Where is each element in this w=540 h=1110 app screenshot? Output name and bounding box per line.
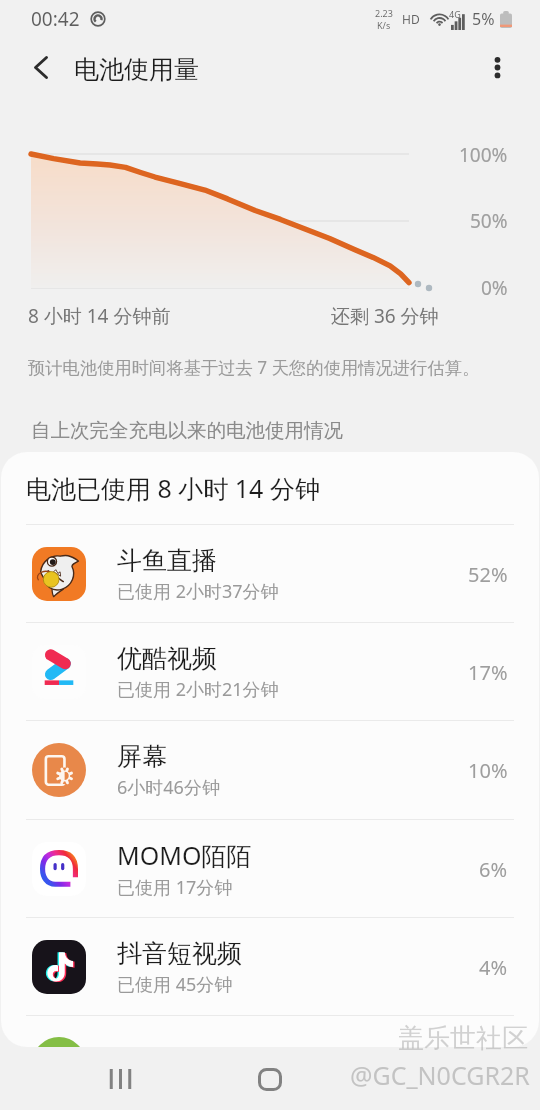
button[interactable]: Back [16, 42, 66, 92]
staticText: 还剩 36 分钟 [331, 303, 439, 329]
staticText: 已使用 17分钟 [117, 875, 233, 900]
button[interactable]: Recent apps [95, 1055, 143, 1103]
staticText: 4% [479, 954, 508, 981]
staticText: 已使用 2小时37分钟 [117, 579, 279, 604]
staticText: K/s [377, 19, 391, 31]
staticText: 17% [468, 659, 508, 686]
staticText: 8 小时 14 分钟前 [28, 303, 171, 329]
staticText: 屏幕 [117, 741, 167, 772]
staticText: 电池使用量 [74, 54, 199, 85]
staticText: 电池已使用 8 小时 14 分钟 [26, 471, 320, 505]
button[interactable]: 抖音短视频 [1, 918, 539, 1016]
staticText: 已使用 45分钟 [117, 972, 233, 997]
staticText: 盖乐世社区 [398, 1022, 528, 1055]
staticText: @GC_N0CGR2R [350, 1058, 530, 1092]
staticText: 自上次完全充电以来的电池使用情况 [31, 418, 343, 443]
staticText: 预计电池使用时间将基于过去 7 天您的使用情况进行估算。 [28, 356, 480, 380]
staticText: MOMO陌陌 [117, 838, 252, 872]
staticText: 2.23 [375, 7, 393, 19]
button[interactable]: 斗鱼直播 [1, 525, 539, 623]
staticText: 100% [459, 142, 508, 168]
staticText: 抖音短视频 [117, 938, 242, 969]
staticText: HD [402, 11, 420, 27]
staticText: 52% [468, 561, 508, 588]
staticText: 10% [468, 757, 508, 784]
staticText: 50% [470, 208, 508, 234]
staticText: 斗鱼直播 [117, 545, 217, 576]
button[interactable]: More options [473, 42, 523, 92]
staticText: 优酷视频 [117, 643, 217, 674]
staticText: 4G [449, 8, 461, 20]
button[interactable]: 优酷视频 [1, 623, 539, 721]
staticText: 00:42 [31, 6, 80, 32]
staticText: 6小时46分钟 [117, 775, 220, 800]
staticText: 已使用 2小时21分钟 [117, 677, 279, 702]
button[interactable]: Home [246, 1055, 294, 1103]
button[interactable]: MOMO陌陌 [1, 820, 539, 918]
staticText: 5% [472, 8, 495, 30]
staticText: 0% [481, 275, 508, 301]
button[interactable]: 屏幕 [1, 721, 539, 819]
staticText: 6% [479, 856, 508, 883]
